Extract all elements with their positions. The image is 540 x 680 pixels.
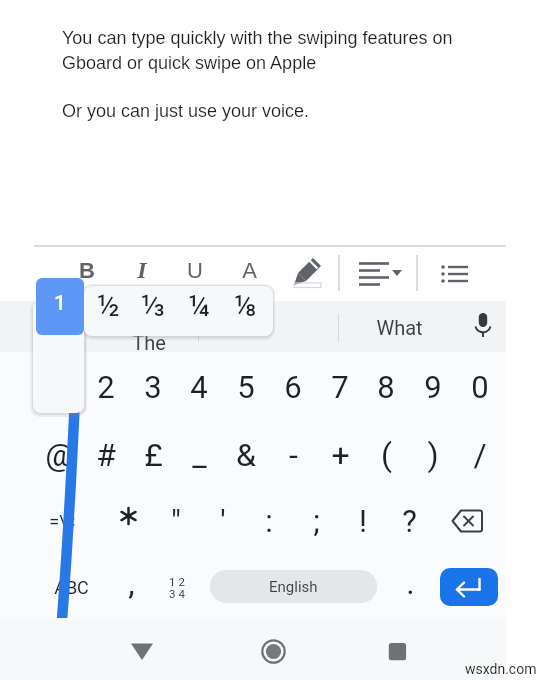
button[interactable]: , xyxy=(111,555,151,611)
staticText: - xyxy=(289,436,298,474)
staticText: A xyxy=(242,258,257,283)
staticText: ¼ xyxy=(188,289,210,323)
button[interactable]: ½ xyxy=(85,281,131,331)
staticText: ⅓ xyxy=(140,289,166,323)
staticText: ABC xyxy=(54,577,89,598)
staticText: 4 xyxy=(190,369,208,405)
button[interactable]: ! xyxy=(341,491,385,551)
staticText: ' xyxy=(220,503,226,539)
staticText: Or you can just use your voice. xyxy=(62,101,310,121)
staticText: I xyxy=(137,257,147,284)
staticText: + xyxy=(331,436,350,474)
button[interactable]: ⅓ xyxy=(130,281,176,331)
button[interactable]: 5 xyxy=(223,355,269,419)
button[interactable] xyxy=(251,629,296,674)
staticText: . xyxy=(406,564,415,602)
button[interactable] xyxy=(440,568,498,606)
button[interactable]: - xyxy=(270,423,316,487)
button[interactable] xyxy=(288,250,330,294)
staticText: U xyxy=(187,258,203,283)
button[interactable]: / xyxy=(457,423,503,487)
staticText: You can type quickly with the swiping fe… xyxy=(62,28,453,72)
button[interactable]: 2 xyxy=(83,355,129,419)
button[interactable]: ABC xyxy=(41,559,101,615)
button[interactable]: ? xyxy=(387,491,431,551)
button[interactable] xyxy=(352,250,408,294)
button[interactable] xyxy=(465,308,501,348)
button[interactable]: ' xyxy=(201,491,245,551)
button[interactable]: I xyxy=(120,248,164,292)
button[interactable] xyxy=(375,629,420,674)
button[interactable]: 0 xyxy=(457,355,503,419)
button[interactable] xyxy=(444,498,492,544)
button[interactable]: & xyxy=(223,423,269,487)
staticText: & xyxy=(236,436,256,474)
button[interactable]: : xyxy=(247,491,291,551)
staticText: ⅛ xyxy=(234,289,257,323)
staticText: 5 xyxy=(237,369,255,405)
staticText: 6 xyxy=(284,369,302,405)
button[interactable]: B xyxy=(65,248,109,292)
button[interactable]: @ xyxy=(36,423,82,487)
button[interactable]: " xyxy=(154,491,198,551)
staticText: wsxdn.com xyxy=(465,661,537,677)
button[interactable]: ; xyxy=(294,491,338,551)
staticText: 9 xyxy=(424,369,442,405)
staticText: ½ xyxy=(97,289,120,323)
staticText: ! xyxy=(359,503,367,539)
staticText: 7 xyxy=(331,369,349,405)
button[interactable]: + xyxy=(317,423,363,487)
button[interactable] xyxy=(438,252,474,292)
button[interactable]: 4 xyxy=(176,355,222,419)
button[interactable]: 7 xyxy=(317,355,363,419)
staticText: The xyxy=(132,331,166,354)
button[interactable]: 6 xyxy=(270,355,316,419)
staticText: @ xyxy=(45,436,74,474)
staticText: What xyxy=(376,316,423,339)
button[interactable]: U xyxy=(173,248,217,292)
button[interactable]: A xyxy=(227,248,271,292)
button[interactable]: . xyxy=(390,555,430,611)
staticText: B xyxy=(79,258,95,283)
button[interactable] xyxy=(106,494,152,548)
button[interactable]: # xyxy=(83,423,129,487)
button[interactable]: What xyxy=(354,305,444,349)
button[interactable]: 3 xyxy=(130,355,176,419)
staticText: £ xyxy=(144,436,163,474)
staticText: 1 2 3 4 xyxy=(169,575,185,600)
button[interactable]: ) xyxy=(410,423,456,487)
button[interactable]: ¼ xyxy=(176,281,222,331)
staticText: English xyxy=(269,578,318,596)
button[interactable]: 1 xyxy=(36,278,84,335)
staticText: 1 xyxy=(54,291,66,316)
staticText: ? xyxy=(402,503,417,539)
button[interactable]: 8 xyxy=(363,355,409,419)
button[interactable]: English xyxy=(210,570,377,603)
staticText: " xyxy=(171,503,181,539)
button[interactable]: =\< xyxy=(30,491,94,551)
staticText: =\< xyxy=(49,511,76,532)
staticText: 0 xyxy=(471,369,489,405)
staticText: ) xyxy=(427,436,439,474)
button[interactable]: 1 xyxy=(36,355,82,419)
staticText: # xyxy=(96,436,116,474)
staticText: 8 xyxy=(377,369,395,405)
staticText: ( xyxy=(381,436,392,474)
button[interactable]: 1 2 3 4 xyxy=(157,559,197,615)
staticText: 3 xyxy=(144,369,162,405)
staticText: / xyxy=(473,436,487,474)
button[interactable]: ⅛ xyxy=(222,281,268,331)
staticText: 2 xyxy=(97,369,115,405)
button[interactable]: £ xyxy=(130,423,176,487)
button[interactable]: _ xyxy=(176,423,222,487)
button[interactable]: ( xyxy=(363,423,409,487)
staticText: _ xyxy=(192,436,207,474)
button[interactable]: The xyxy=(114,327,184,357)
staticText: , xyxy=(128,564,135,602)
button[interactable]: 9 xyxy=(410,355,456,419)
button[interactable] xyxy=(120,630,164,674)
staticText: : xyxy=(265,503,273,539)
staticText: ; xyxy=(313,503,320,539)
